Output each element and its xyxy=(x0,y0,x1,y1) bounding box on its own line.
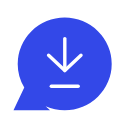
button[interactable]: Download message xyxy=(0,0,128,128)
